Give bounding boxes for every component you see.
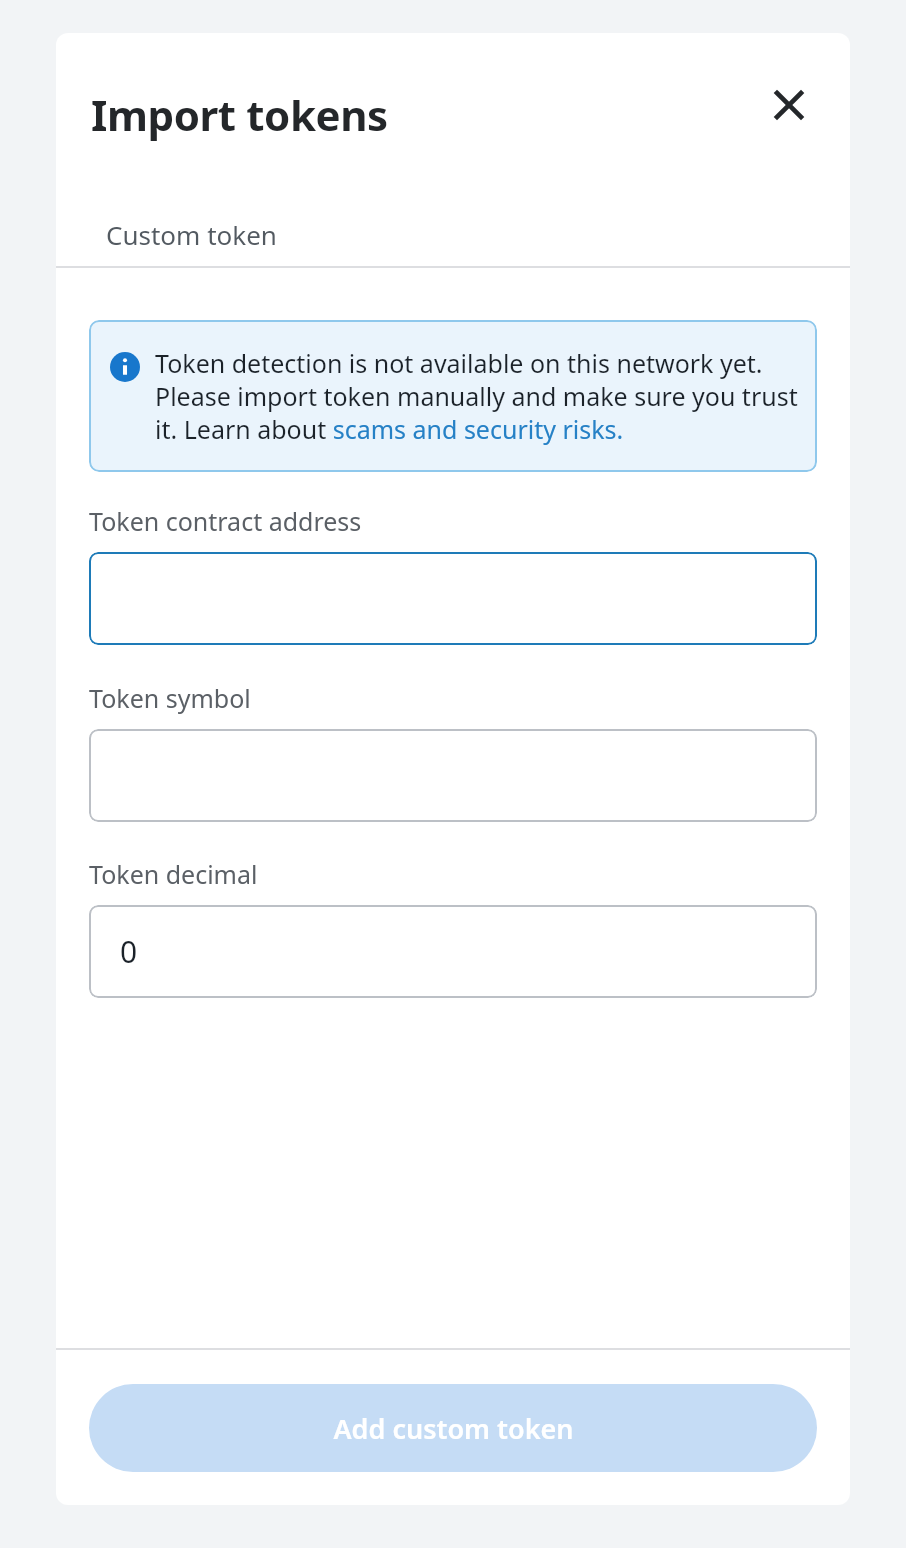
staticText: Token detection is not available on this…: [155, 346, 803, 446]
button[interactable]: [89, 552, 817, 645]
staticText: Token contract address: [89, 504, 362, 538]
button[interactable]: Add custom token: [89, 1384, 817, 1472]
button[interactable]: Token detection is not available on this…: [89, 320, 817, 472]
button[interactable]: Close: [761, 77, 816, 132]
staticText: Import tokens: [91, 86, 388, 143]
button[interactable]: Custom token: [56, 207, 327, 262]
staticText: Token symbol: [89, 681, 251, 715]
staticText: Token decimal: [89, 857, 258, 891]
staticText: Custom token: [106, 217, 277, 252]
staticText: 0: [120, 931, 138, 972]
button[interactable]: 0: [89, 905, 817, 998]
button[interactable]: [89, 729, 817, 822]
staticText: Add custom token: [333, 1410, 574, 1447]
